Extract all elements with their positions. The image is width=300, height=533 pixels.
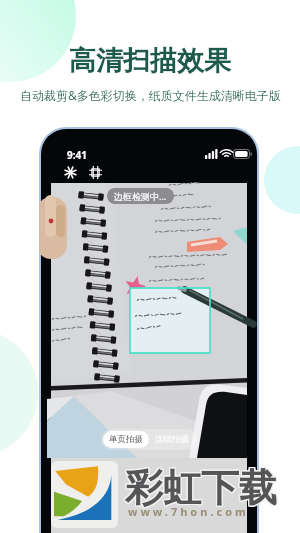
staticText: 彩虹下载: [125, 463, 277, 511]
staticText: 彩虹下载: [124, 464, 276, 512]
staticText: 彩虹下载: [126, 463, 278, 511]
staticText: 自动裁剪&多色彩切换，纸质文件生成清晰电子版: [20, 87, 281, 103]
staticText: 高清扫描效果: [69, 44, 231, 78]
staticText: 连续拍摄: [155, 434, 189, 445]
staticText: 彩虹下载: [124, 463, 276, 511]
staticText: 彩虹下载: [126, 465, 278, 513]
staticText: 单页拍摄: [109, 434, 143, 445]
staticText: 彩虹下载: [125, 465, 277, 513]
staticText: 9:41: [67, 148, 87, 162]
button[interactable]: Enhance: [64, 166, 77, 179]
staticText: 彩虹下载: [125, 464, 277, 512]
button[interactable]: 单页拍摄: [109, 434, 143, 445]
staticText: 边框检测中...: [114, 190, 167, 202]
staticText: 彩虹下载: [124, 465, 276, 513]
staticText: 彩虹下载: [126, 464, 278, 512]
button[interactable]: Crop frame: [89, 166, 102, 179]
button[interactable]: 边框检测中...: [114, 190, 167, 202]
staticText: www.7hon.com: [128, 504, 249, 519]
button[interactable]: 连续拍摄: [155, 434, 189, 445]
